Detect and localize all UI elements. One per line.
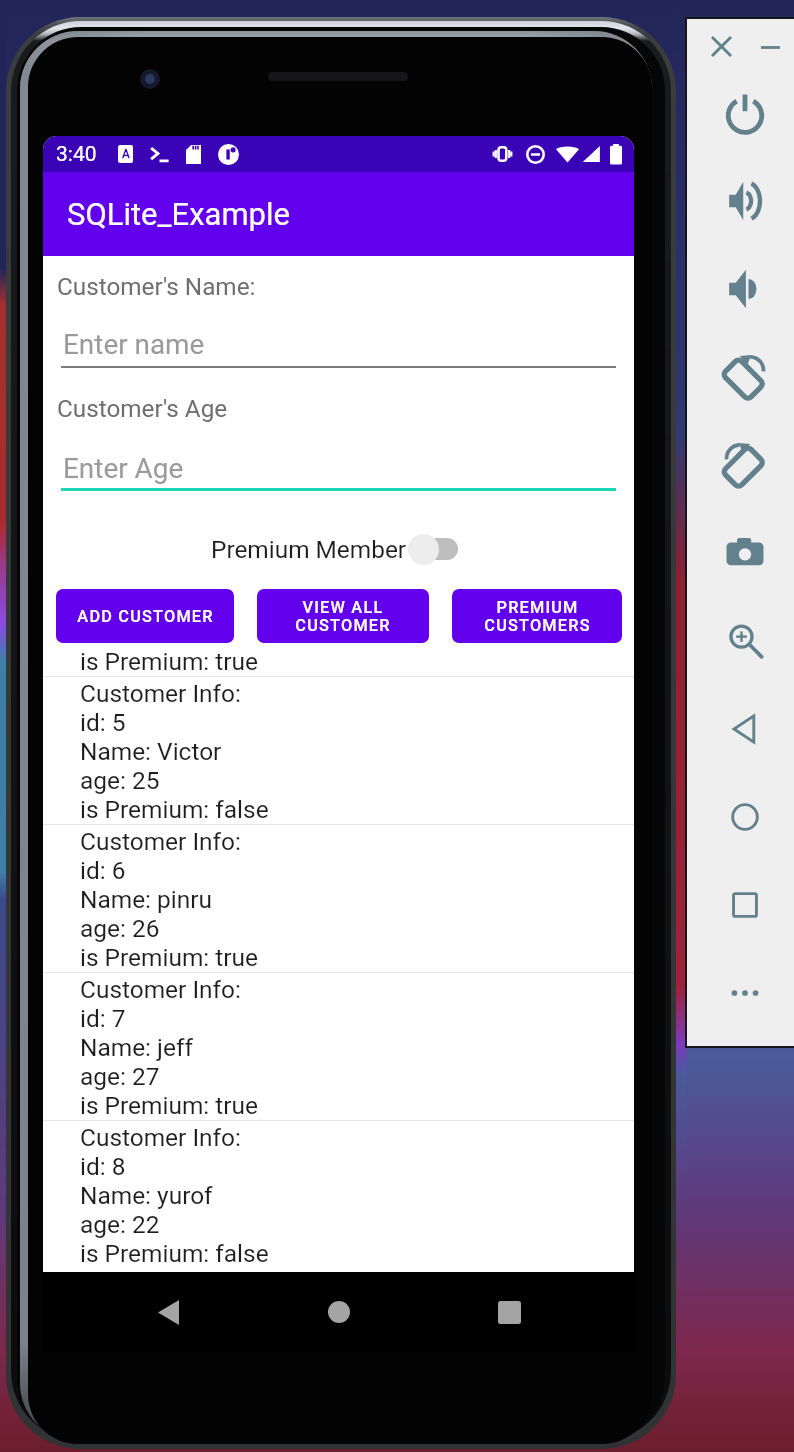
button[interactable]: Volume up xyxy=(709,165,781,237)
staticText: Premium Member xyxy=(211,535,407,564)
staticText: VIEW ALL CUSTOMER xyxy=(295,598,391,635)
staticText: Customer's Age xyxy=(57,394,228,422)
button[interactable]: Recents xyxy=(485,1288,533,1336)
staticText: Customer's Name: xyxy=(57,272,256,300)
button[interactable]: Home xyxy=(315,1288,363,1336)
staticText: Customer Info: id: 8 Name: yurof age: 22… xyxy=(80,1123,269,1268)
staticText: ADD CUSTOMER xyxy=(77,607,214,626)
button[interactable]: Volume down xyxy=(709,253,781,325)
button[interactable]: Zoom xyxy=(709,605,781,677)
staticText: Customer Info: id: 4 Name: ricky age: 24… xyxy=(80,531,259,676)
button[interactable]: Close xyxy=(703,28,739,64)
button[interactable]: Power xyxy=(709,77,781,149)
button[interactable]: PREMIUM CUSTOMERS xyxy=(452,589,622,643)
button[interactable]: ADD CUSTOMER xyxy=(56,589,234,643)
button[interactable]: Customer Info: id: 8 Name: yurof age: 22… xyxy=(43,1120,634,1268)
button[interactable]: Customer Info: id: 7 Name: jeff age: 27 … xyxy=(43,972,634,1120)
button[interactable]: VIEW ALL CUSTOMER xyxy=(257,589,429,643)
button[interactable]: Rotate right xyxy=(709,429,781,501)
button[interactable]: Rotate left xyxy=(709,341,781,413)
button[interactable]: Customer Info: id: 6 Name: pinru age: 26… xyxy=(43,824,634,972)
button[interactable]: Back xyxy=(709,693,781,765)
staticText: A xyxy=(122,147,130,161)
button[interactable]: Screenshot xyxy=(709,517,781,589)
button[interactable]: More xyxy=(709,957,781,1029)
staticText: Enter name xyxy=(63,328,205,361)
staticText: Customer Info: id: 5 Name: Victor age: 2… xyxy=(80,679,269,824)
staticText: Customer Info: id: 7 Name: jeff age: 27 … xyxy=(80,975,259,1120)
staticText: SQLite_Example xyxy=(67,196,290,232)
button[interactable]: Overview xyxy=(709,869,781,941)
staticText: PREMIUM CUSTOMERS xyxy=(484,598,591,635)
staticText: Customer Info: id: 6 Name: pinru age: 26… xyxy=(80,827,259,972)
button[interactable]: Minimize xyxy=(752,29,788,65)
button[interactable]: Customer Info: id: 5 Name: Victor age: 2… xyxy=(43,676,634,824)
button[interactable]: Customer Info: id: 4 Name: ricky age: 24… xyxy=(43,528,634,676)
button[interactable]: Home xyxy=(709,781,781,853)
button[interactable] xyxy=(408,532,458,566)
staticText: Enter Age xyxy=(63,452,184,485)
staticText: 3:40 xyxy=(56,142,97,167)
button[interactable]: Back xyxy=(144,1288,192,1336)
